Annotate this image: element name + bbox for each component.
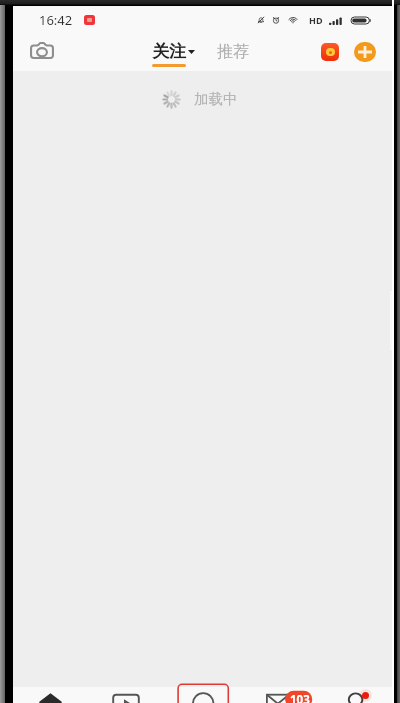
button[interactable]: Add post (354, 42, 376, 62)
button[interactable]: Profile (316, 687, 392, 703)
staticText: 关注 (152, 41, 186, 62)
button[interactable]: Discover (164, 687, 240, 703)
staticText: HD (309, 14, 323, 26)
button[interactable]: Home (13, 687, 88, 703)
staticText: 103 (290, 692, 310, 703)
button[interactable]: Camera (24, 33, 60, 71)
button[interactable]: Videos (88, 687, 164, 703)
staticText: 16:42 (39, 11, 73, 29)
button[interactable]: 关注 (147, 33, 400, 71)
button[interactable]: 推荐 (210, 33, 254, 71)
button[interactable]: Messages (240, 687, 316, 703)
staticText: 推荐 (217, 42, 249, 62)
staticText: 加载中 (194, 90, 238, 108)
button[interactable]: Live (321, 43, 339, 61)
